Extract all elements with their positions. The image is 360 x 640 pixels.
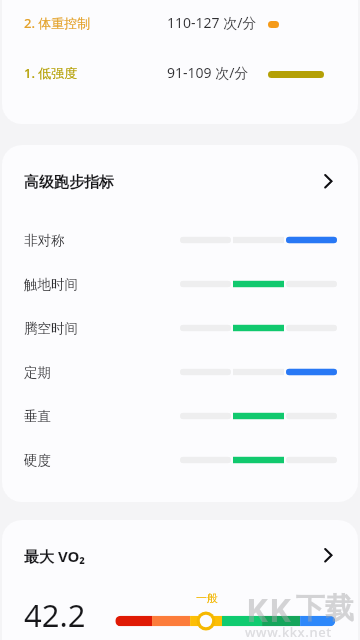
staticText: 触地时间 [24,276,78,293]
button[interactable]: 硬度 [2,438,358,482]
staticText: 硬度 [24,452,51,469]
button[interactable]: 1. 低强度 [2,57,358,89]
staticText: 下载 [296,590,354,627]
button[interactable]: 触地时间 [2,262,358,306]
button[interactable]: 2. 体重控制 [2,7,358,39]
staticText: 110-127 次/分 [167,13,257,32]
staticText: 非对称 [24,232,65,249]
staticText: 最大 VO₂ [24,546,86,566]
staticText: 一般 [196,591,218,605]
staticText: 腾空时间 [24,320,78,337]
other: 查看详情 [320,547,338,565]
button[interactable]: 定期 [2,350,358,394]
staticText: 42.2 [24,594,86,636]
button[interactable]: 非对称 [2,218,358,262]
other: 查看详情 [320,173,338,191]
button[interactable]: 垂直 [2,394,358,438]
button[interactable]: 高级跑步指标 [2,160,358,204]
staticText: 2. 体重控制 [24,14,91,32]
staticText: 高级跑步指标 [24,173,114,192]
button[interactable]: 腾空时间 [2,306,358,350]
button[interactable]: 最大 VO₂ [2,534,358,578]
staticText: 定期 [24,364,51,381]
staticText: 垂直 [24,408,51,425]
staticText: www.kkx.net [245,623,332,640]
staticText: 91-109 次/分 [167,63,249,82]
staticText: KK [246,587,292,632]
staticText: 1. 低强度 [24,64,78,82]
